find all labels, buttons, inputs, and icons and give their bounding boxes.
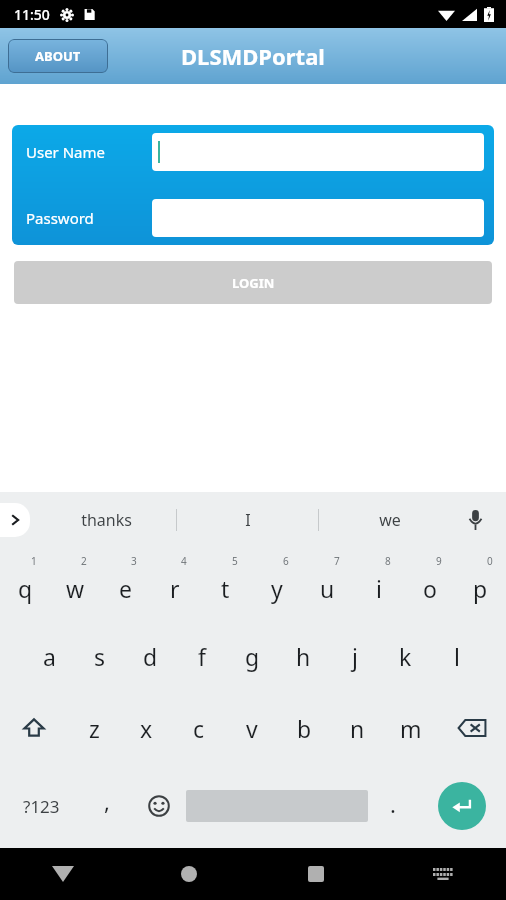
button[interactable]: Home <box>126 848 252 900</box>
staticText: l <box>454 641 460 672</box>
staticText: r <box>170 573 180 604</box>
button[interactable]: n <box>331 692 384 764</box>
button[interactable]: Enter <box>438 782 486 830</box>
staticText: ?123 <box>23 795 60 818</box>
staticText: k <box>399 641 412 672</box>
staticText: 1 <box>31 554 37 568</box>
button[interactable]: I <box>177 492 318 548</box>
staticText: y <box>271 573 283 604</box>
staticText: LOGIN <box>232 274 275 292</box>
button[interactable]: g <box>227 620 278 692</box>
button[interactable] <box>152 199 484 237</box>
staticText: v <box>246 713 258 744</box>
staticText: 4 <box>181 554 187 568</box>
staticText: z <box>89 713 100 744</box>
button[interactable]: 7 <box>302 548 353 620</box>
button[interactable]: v <box>225 692 278 764</box>
staticText: 5 <box>232 554 238 568</box>
staticText: I <box>245 509 251 531</box>
button[interactable]: c <box>172 692 225 764</box>
button[interactable]: 4 <box>150 548 200 620</box>
staticText: b <box>297 713 312 744</box>
button[interactable]: d <box>125 620 176 692</box>
button[interactable]: Voice input <box>458 503 492 537</box>
button[interactable]: 1 <box>0 548 50 620</box>
button[interactable]: Shift <box>0 692 68 764</box>
button[interactable]: k <box>380 620 431 692</box>
staticText: ABOUT <box>35 47 81 65</box>
button[interactable]: Switch keyboard <box>379 848 506 900</box>
button[interactable]: f <box>176 620 227 692</box>
button[interactable]: ABOUT <box>8 39 108 73</box>
staticText: i <box>376 573 382 604</box>
staticText: u <box>320 573 335 604</box>
staticText: User Name <box>26 142 106 162</box>
button[interactable]: Backspace <box>437 692 506 764</box>
button[interactable]: 5 <box>200 548 251 620</box>
staticText: f <box>198 641 206 672</box>
button[interactable]: 2 <box>50 548 100 620</box>
staticText: t <box>221 573 230 604</box>
button[interactable]: z <box>68 692 120 764</box>
button[interactable]: 8 <box>353 548 404 620</box>
staticText: h <box>296 641 311 672</box>
button[interactable]: . <box>368 764 418 848</box>
button[interactable]: 6 <box>251 548 302 620</box>
button[interactable]: s <box>74 620 125 692</box>
staticText: thanks <box>81 509 132 531</box>
staticText: n <box>350 713 365 744</box>
button[interactable]: b <box>278 692 331 764</box>
button[interactable]: Back <box>0 848 126 900</box>
staticText: 9 <box>436 554 442 568</box>
staticText: 0 <box>487 554 493 568</box>
staticText: 7 <box>334 554 340 568</box>
staticText: j <box>352 641 358 672</box>
staticText: e <box>119 573 132 604</box>
staticText: 8 <box>385 554 391 568</box>
button[interactable]: l <box>431 620 482 692</box>
button[interactable]: we <box>319 492 460 548</box>
button[interactable]: LOGIN <box>14 261 492 304</box>
button[interactable]: 0 <box>455 548 506 620</box>
button[interactable]: thanks <box>36 492 176 548</box>
staticText: . <box>390 789 396 819</box>
staticText: w <box>66 573 85 604</box>
button[interactable]: 3 <box>100 548 150 620</box>
staticText: x <box>140 713 153 744</box>
staticText: we <box>379 509 401 531</box>
button[interactable]: m <box>384 692 437 764</box>
button[interactable]: j <box>329 620 380 692</box>
staticText: o <box>423 573 437 604</box>
button[interactable] <box>152 133 484 171</box>
staticText: 11:50 <box>14 5 50 24</box>
staticText: Password <box>26 208 94 228</box>
button[interactable]: ?123 <box>0 764 82 848</box>
button[interactable]: h <box>278 620 329 692</box>
staticText: d <box>143 641 158 672</box>
staticText: p <box>473 573 488 604</box>
staticText: s <box>94 641 106 672</box>
staticText: a <box>43 641 56 672</box>
button[interactable]: x <box>120 692 172 764</box>
button[interactable]: 9 <box>404 548 455 620</box>
staticText: 2 <box>81 554 87 568</box>
button[interactable]: Emoji <box>131 764 186 848</box>
staticText: g <box>245 641 260 672</box>
button[interactable]: , <box>82 764 131 848</box>
button[interactable]: a <box>24 620 74 692</box>
button[interactable]: Recents <box>252 848 379 900</box>
staticText: DLSMDPortal <box>181 41 325 71</box>
staticText: m <box>400 713 422 744</box>
staticText: 6 <box>283 554 289 568</box>
staticText: c <box>193 713 205 744</box>
staticText: 3 <box>131 554 137 568</box>
button[interactable]: Expand suggestions <box>0 503 30 537</box>
staticText: , <box>104 786 110 816</box>
staticText: q <box>18 573 33 604</box>
